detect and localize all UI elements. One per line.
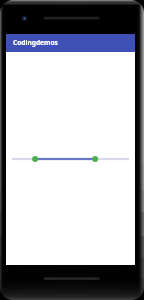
button[interactable]: Codingdemos — [6, 34, 135, 52]
staticText: Codingdemos — [13, 38, 58, 47]
button[interactable]: Range slider — [6, 153, 135, 165]
